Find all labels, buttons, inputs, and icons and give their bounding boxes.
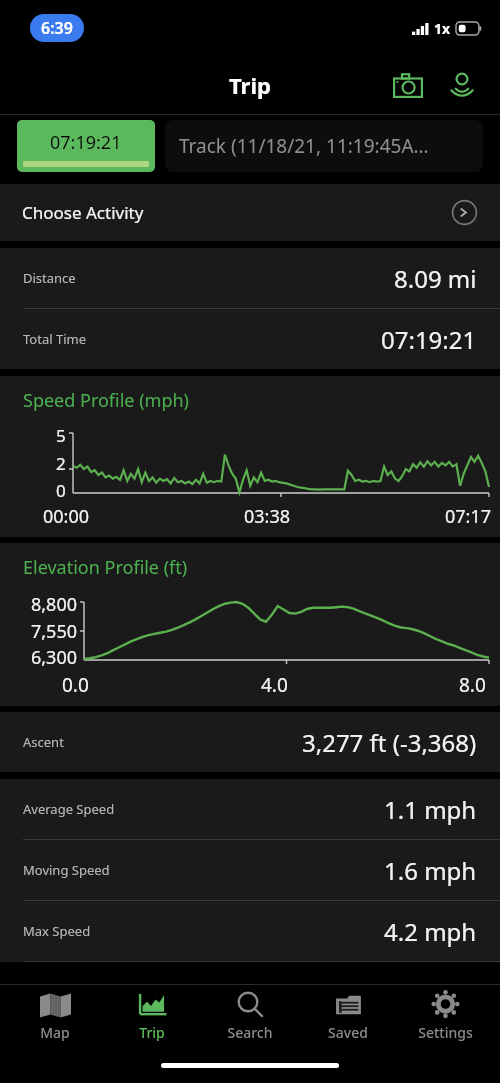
button[interactable]: Average Speed [0, 779, 500, 839]
button[interactable]: Search [207, 985, 293, 1047]
staticText: 2 [56, 452, 66, 475]
staticText: 8.0 [459, 672, 486, 698]
staticText: 07:17 [445, 504, 492, 529]
staticText: 6,300 [31, 645, 78, 670]
staticText: 1.6 mph [384, 854, 477, 887]
staticText: Search [227, 1023, 273, 1042]
staticText: Total Time [23, 330, 86, 348]
staticText: Average Speed [23, 800, 115, 818]
button[interactable]: Track (11/18/21, 11:19:45A… [165, 120, 483, 172]
staticText: Distance [23, 269, 76, 287]
staticText: Moving Speed [23, 861, 110, 879]
staticText: 0 [56, 479, 66, 502]
staticText: 7,550 [31, 619, 78, 644]
staticText: 3,277 ft (-3,368) [302, 726, 477, 759]
button[interactable]: Trip [109, 985, 195, 1047]
staticText: Trip [229, 70, 271, 100]
staticText: 8,800 [31, 592, 78, 617]
staticText: 8.09 mi [394, 262, 477, 295]
staticText: 07:19:21 [50, 130, 122, 155]
button[interactable]: Map [12, 985, 98, 1047]
staticText: Map [40, 1023, 70, 1042]
staticText: 1.1 mph [384, 793, 477, 826]
staticText: Choose Activity [22, 201, 144, 224]
button[interactable]: Ascent [0, 712, 500, 772]
staticText: 4.2 mph [384, 915, 477, 948]
staticText: Ascent [23, 733, 64, 751]
button[interactable]: Total Time [0, 309, 500, 369]
button[interactable]: Max Speed [0, 901, 500, 961]
button[interactable]: Profile [438, 61, 486, 109]
button[interactable]: 07:19:21 [17, 120, 155, 172]
staticText: 4.0 [261, 672, 288, 698]
button[interactable]: Saved [305, 985, 391, 1047]
button[interactable]: Distance [0, 248, 500, 308]
staticText: Settings [418, 1023, 473, 1042]
staticText: Saved [328, 1023, 368, 1042]
staticText: 1x [434, 19, 451, 38]
button[interactable]: Choose Activity [0, 184, 500, 241]
staticText: 03:38 [244, 504, 291, 529]
staticText: Track (11/18/21, 11:19:45A… [179, 133, 429, 159]
staticText: Trip [139, 1023, 165, 1042]
button[interactable]: Settings [402, 985, 488, 1047]
staticText: Elevation Profile (ft) [23, 555, 188, 580]
staticText: Max Speed [23, 922, 91, 940]
staticText: 5 [56, 424, 66, 447]
staticText: Speed Profile (mph) [23, 388, 189, 413]
button[interactable]: Moving Speed [0, 840, 500, 900]
staticText: 6:39 [41, 17, 73, 39]
staticText: 00:00 [43, 504, 90, 529]
staticText: 0.0 [62, 672, 89, 698]
button[interactable]: Camera [384, 61, 432, 109]
staticText: 07:19:21 [381, 323, 477, 356]
